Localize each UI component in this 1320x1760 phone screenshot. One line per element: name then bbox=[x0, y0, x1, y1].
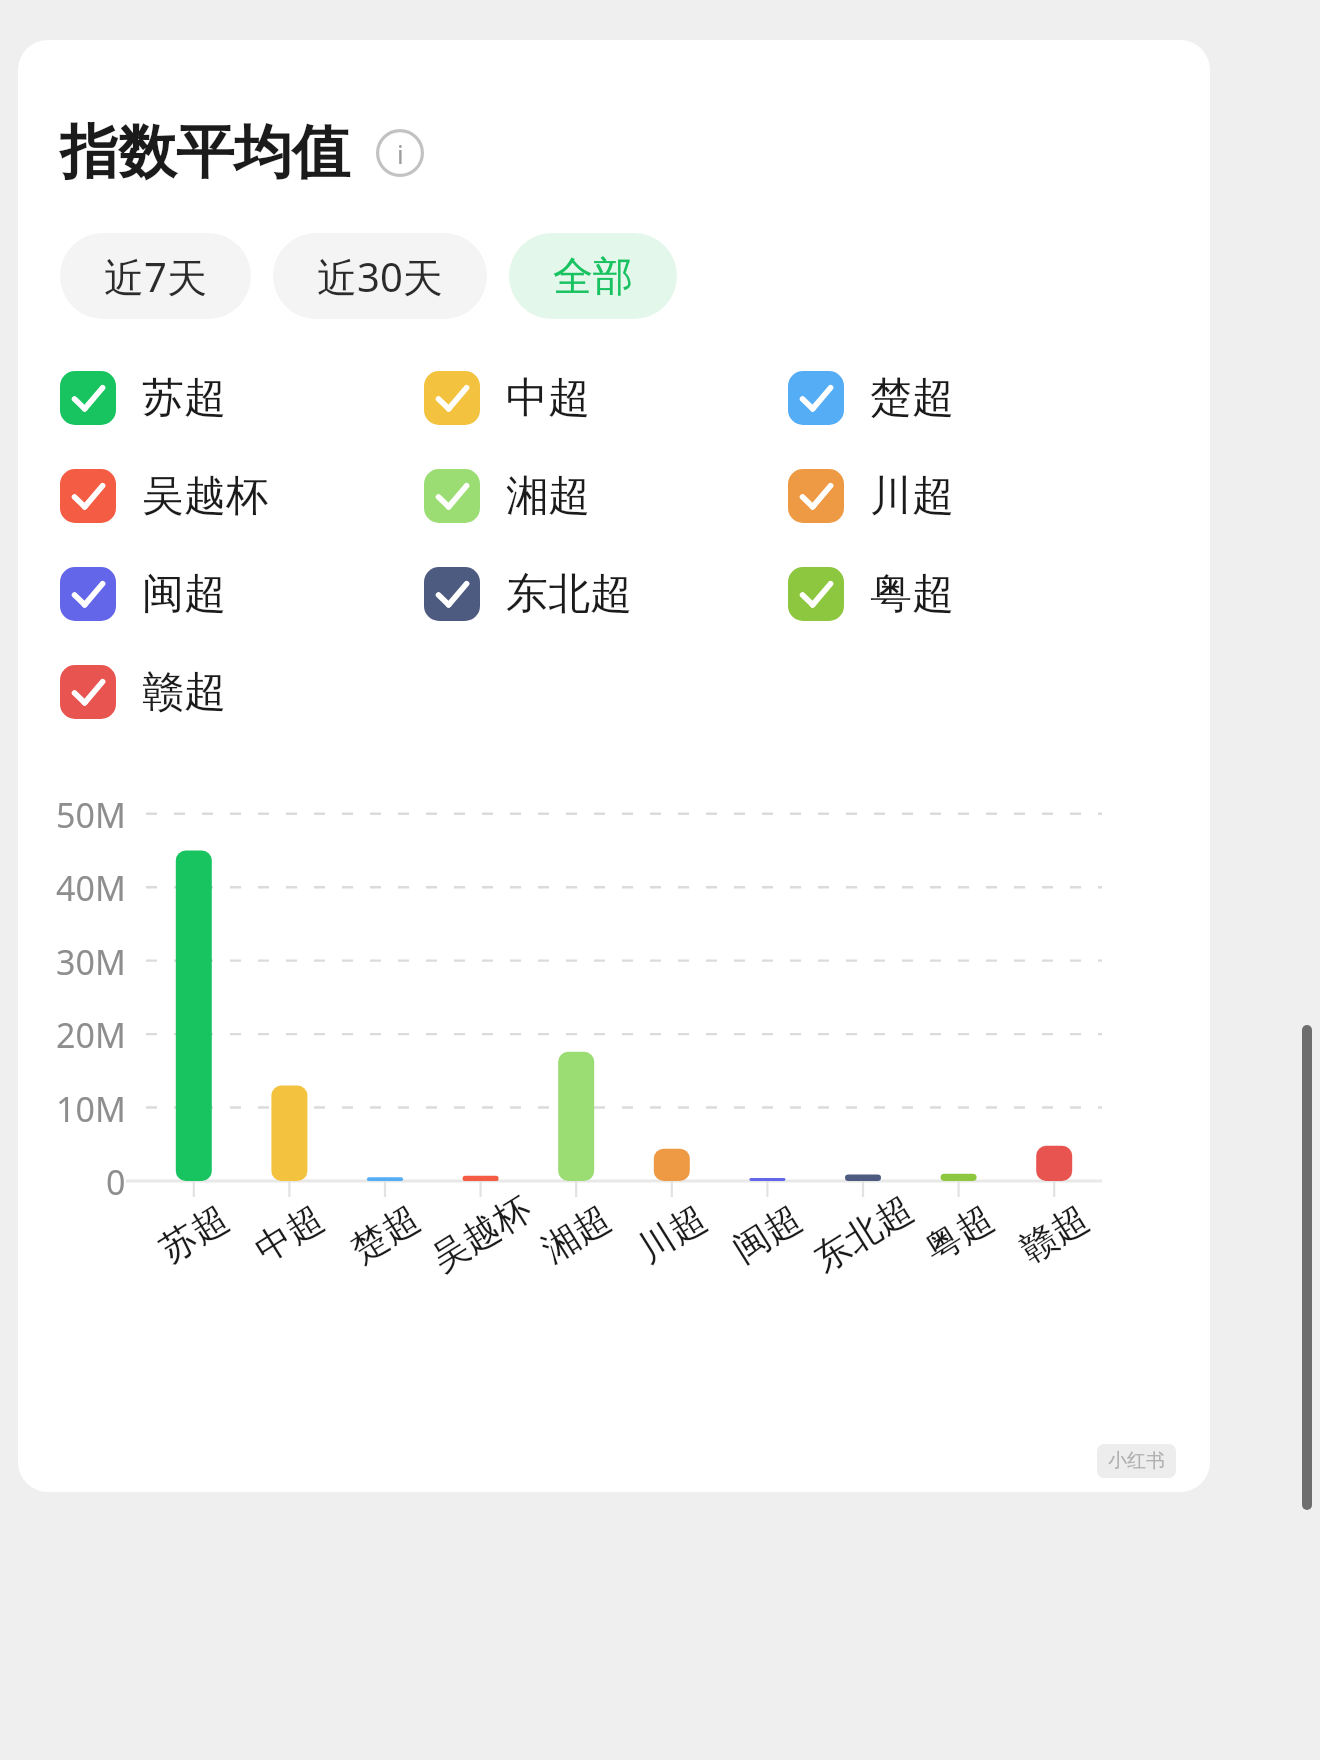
staticText: 粤超 bbox=[916, 1195, 1001, 1272]
staticText: 40M bbox=[56, 865, 126, 911]
button[interactable]: 粤超 bbox=[788, 545, 1152, 643]
staticText: 楚超 bbox=[870, 372, 954, 425]
staticText: 30M bbox=[56, 939, 126, 985]
staticText: 赣超 bbox=[142, 666, 226, 719]
button[interactable]: 川超 bbox=[788, 447, 1152, 545]
staticText: 小红书 bbox=[1108, 1449, 1165, 1473]
staticText: 苏超 bbox=[142, 372, 226, 425]
staticText: 中超 bbox=[506, 372, 590, 425]
staticText: 赣超 bbox=[1011, 1195, 1096, 1272]
staticText: 川超 bbox=[629, 1195, 714, 1272]
staticText: 湘超 bbox=[533, 1195, 618, 1272]
staticText: 近30天 bbox=[317, 249, 443, 304]
staticText: 全部 bbox=[553, 251, 633, 301]
button[interactable]: 湘超 bbox=[424, 447, 788, 545]
button[interactable]: 闽超 bbox=[60, 545, 424, 643]
staticText: 50M bbox=[56, 792, 126, 838]
staticText: 近7天 bbox=[104, 249, 207, 304]
staticText: 0 bbox=[106, 1159, 126, 1205]
button[interactable]: 全部 bbox=[509, 233, 677, 319]
button[interactable]: 近7天 bbox=[60, 233, 251, 319]
button[interactable]: 苏超 bbox=[60, 349, 424, 447]
staticText: 闽超 bbox=[724, 1195, 809, 1272]
button[interactable]: 东北超 bbox=[424, 545, 788, 643]
button[interactable]: 吴越杯 bbox=[60, 447, 424, 545]
button[interactable]: 楚超 bbox=[788, 349, 1152, 447]
staticText: 湘超 bbox=[506, 470, 590, 523]
staticText: 中超 bbox=[246, 1195, 331, 1272]
staticText: 20M bbox=[56, 1012, 126, 1058]
staticText: 吴越杯 bbox=[142, 470, 268, 523]
staticText: i bbox=[397, 136, 404, 171]
staticText: 苏超 bbox=[151, 1195, 236, 1272]
staticText: 10M bbox=[56, 1086, 126, 1132]
button[interactable]: 信息 bbox=[376, 129, 424, 177]
staticText: 川超 bbox=[870, 470, 954, 523]
staticText: 吴越杯 bbox=[423, 1186, 539, 1281]
button[interactable]: 中超 bbox=[424, 349, 788, 447]
staticText: 指数平均值 bbox=[60, 116, 350, 189]
staticText: 东北超 bbox=[506, 568, 632, 621]
staticText: 闽超 bbox=[142, 568, 226, 621]
staticText: 东北超 bbox=[805, 1186, 921, 1281]
button[interactable]: 近30天 bbox=[273, 233, 487, 319]
staticText: 粤超 bbox=[870, 568, 954, 621]
staticText: 楚超 bbox=[342, 1195, 427, 1272]
button[interactable]: 赣超 bbox=[60, 643, 424, 741]
